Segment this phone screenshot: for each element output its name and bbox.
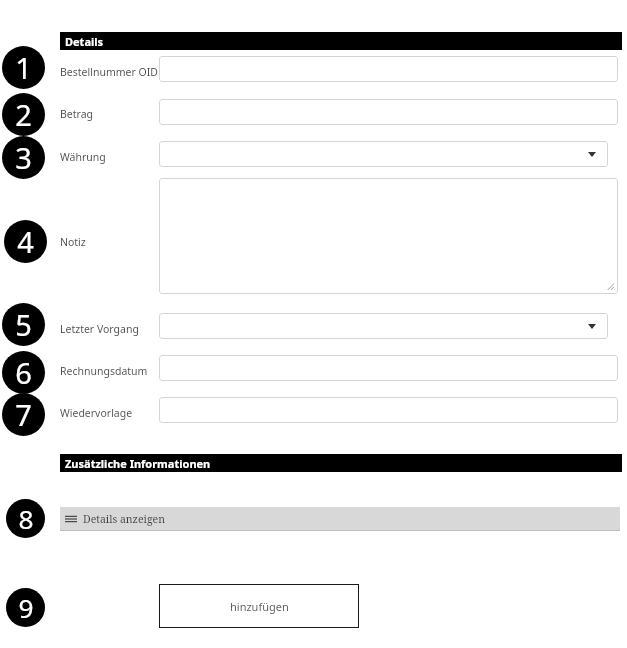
button[interactable] (159, 178, 618, 294)
staticText: Bestellnummer OID (60, 65, 158, 79)
staticText: Betrag (60, 107, 94, 121)
staticText: Währung (60, 150, 106, 164)
staticText: hinzufügen (230, 599, 289, 614)
staticText: 3 (15, 138, 32, 178)
staticText: 9 (18, 590, 34, 626)
button[interactable] (159, 355, 618, 381)
button[interactable]: Auswahl öffnen (159, 141, 608, 167)
staticText: 1 (15, 48, 32, 88)
staticText: 5 (15, 305, 32, 345)
button[interactable] (159, 99, 618, 125)
staticText: Rechnungsdatum (60, 364, 148, 378)
button[interactable] (159, 56, 618, 82)
staticText: Details anzeigen (83, 512, 166, 526)
button[interactable] (159, 397, 618, 423)
button[interactable]: Auswahl öffnen (159, 313, 608, 339)
staticText: Letzter Vorgang (60, 322, 139, 336)
staticText: 2 (15, 95, 32, 135)
staticText: 6 (15, 353, 32, 393)
button[interactable]: Details anzeigen (60, 507, 620, 530)
staticText: 4 (17, 222, 34, 262)
staticText: Details (65, 34, 104, 49)
button[interactable]: hinzufügen (159, 584, 359, 628)
staticText: Zusätzliche Informationen (65, 456, 211, 471)
staticText: Notiz (60, 235, 86, 249)
staticText: 8 (18, 501, 34, 537)
staticText: 7 (15, 395, 32, 435)
staticText: Wiedervorlage (60, 406, 133, 420)
